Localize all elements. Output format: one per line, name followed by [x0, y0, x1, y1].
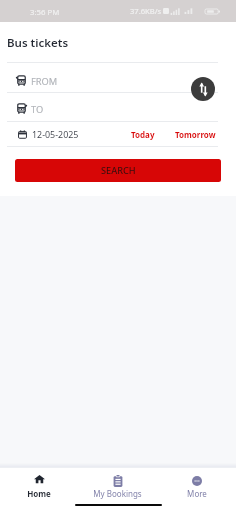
- button[interactable]: TO: [0, 93, 236, 121]
- staticText: SEARCH: [101, 164, 136, 177]
- staticText: Home: [27, 488, 51, 499]
- staticText: 3:56 PM: [30, 7, 60, 18]
- staticText: My Bookings: [93, 488, 142, 499]
- staticText: 37.6KB/s: [130, 6, 162, 16]
- button[interactable]: Tomorrow: [175, 129, 216, 140]
- button[interactable]: Swap origin and destination: [191, 77, 215, 101]
- button[interactable]: More: [157, 468, 236, 499]
- button[interactable]: My Bookings: [78, 468, 157, 499]
- button[interactable]: FROM: [0, 63, 236, 92]
- staticText: More: [187, 488, 207, 499]
- button[interactable]: Today: [131, 129, 155, 140]
- staticText: Bus tickets: [7, 35, 69, 51]
- button[interactable]: SEARCH: [15, 159, 221, 182]
- staticText: TO: [31, 103, 44, 116]
- button[interactable]: Home: [0, 468, 78, 499]
- staticText: 12-05-2025: [32, 128, 79, 140]
- staticText: FROM: [31, 75, 58, 88]
